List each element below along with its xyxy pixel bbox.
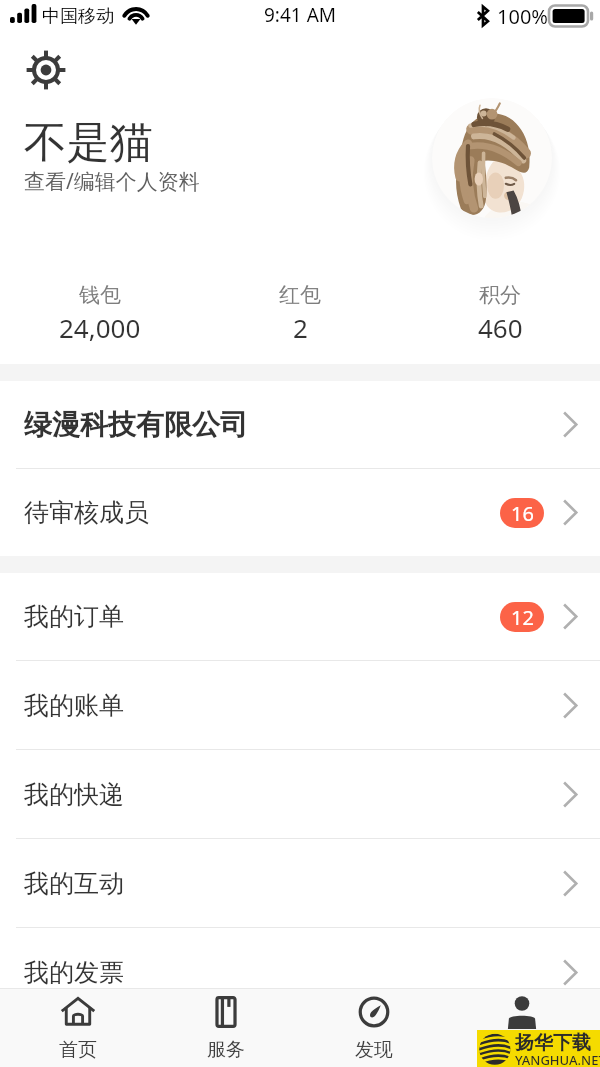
button[interactable]: 查看/编辑个人资料 xyxy=(24,167,200,196)
button[interactable]: 积分 xyxy=(400,245,600,364)
button[interactable]: 我的订单 xyxy=(0,573,600,660)
staticText: 460 xyxy=(478,310,523,345)
staticText: 100% xyxy=(497,3,548,30)
button[interactable]: 我的发票 xyxy=(0,928,600,1016)
button[interactable]: Discover xyxy=(304,989,444,1067)
staticText: 我的发票 xyxy=(24,957,124,988)
staticText: 发现 xyxy=(355,1038,393,1062)
staticText: 中国移动 xyxy=(42,5,114,28)
staticText: 2 xyxy=(293,310,308,345)
staticText: 9:41 AM xyxy=(264,2,337,28)
staticText: 扬华下载 xyxy=(515,1031,591,1055)
button[interactable]: 我的账单 xyxy=(0,661,600,749)
staticText: 16 xyxy=(511,500,534,527)
staticText: 24,000 xyxy=(59,310,141,345)
staticText: 积分 xyxy=(479,282,521,308)
button[interactable]: Settings xyxy=(18,42,74,98)
staticText: 我的 xyxy=(503,1038,541,1062)
button[interactable]: Services xyxy=(156,989,296,1067)
staticText: 钱包 xyxy=(79,282,121,308)
staticText: YANGHUA.NET xyxy=(515,1051,600,1067)
staticText: 我的互动 xyxy=(24,868,124,899)
staticText: 首页 xyxy=(59,1038,97,1062)
button[interactable]: 我的快递 xyxy=(0,750,600,838)
staticText: 我的账单 xyxy=(24,690,124,721)
button[interactable]: Profile photo xyxy=(432,98,552,218)
staticText: 我的快递 xyxy=(24,779,124,810)
button[interactable]: 我的互动 xyxy=(0,839,600,927)
staticText: 待审核成员 xyxy=(24,497,149,528)
button[interactable]: 绿漫科技有限公司 xyxy=(0,381,600,468)
staticText: 红包 xyxy=(279,282,321,308)
staticText: 服务 xyxy=(207,1038,245,1062)
staticText: 不是猫 xyxy=(24,116,153,170)
staticText: 12 xyxy=(511,604,534,631)
staticText: 绿漫科技有限公司 xyxy=(24,407,248,442)
button[interactable]: Home xyxy=(8,989,148,1067)
button[interactable]: 钱包 xyxy=(0,245,200,364)
staticText: 我的订单 xyxy=(24,601,124,632)
button[interactable]: 待审核成员 xyxy=(0,469,600,556)
button[interactable]: Profile xyxy=(452,989,592,1067)
button[interactable]: 红包 xyxy=(200,245,400,364)
